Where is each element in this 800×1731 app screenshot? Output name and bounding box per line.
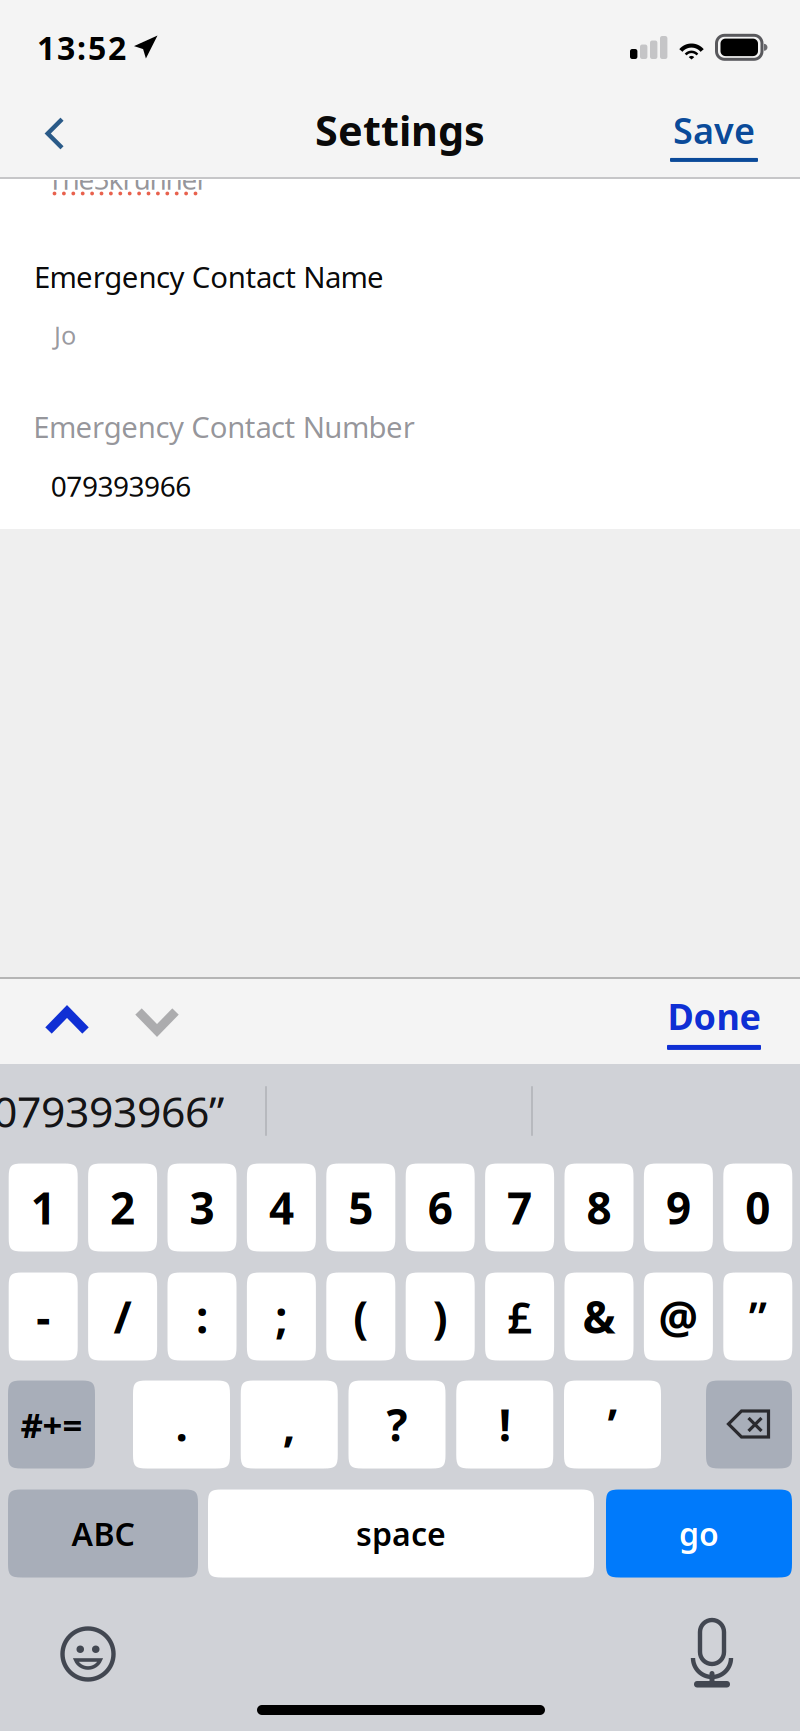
staticText: ) xyxy=(433,1287,448,1346)
staticText: ( xyxy=(353,1287,368,1346)
button[interactable]: @ xyxy=(644,1272,713,1360)
button[interactable]: ’ xyxy=(564,1380,661,1468)
button[interactable]: Next field xyxy=(113,978,201,1064)
button[interactable]: Delete xyxy=(706,1380,792,1468)
button[interactable]: Back xyxy=(17,100,93,166)
button[interactable]: £ xyxy=(485,1272,554,1360)
staticText: ! xyxy=(499,1395,511,1454)
staticText: : xyxy=(196,1287,208,1346)
staticText: 9 xyxy=(666,1178,691,1237)
button[interactable]: Save xyxy=(652,101,776,167)
staticText: Save xyxy=(673,106,755,154)
button[interactable]: 4 xyxy=(247,1163,316,1251)
staticText: 6 xyxy=(428,1178,453,1237)
staticText: Jo xyxy=(54,318,76,352)
button[interactable]: go xyxy=(606,1489,792,1577)
staticText: . xyxy=(175,1395,187,1454)
staticText: Done xyxy=(667,992,760,1040)
staticText: / xyxy=(114,1287,132,1346)
staticText: ’ xyxy=(607,1395,617,1454)
staticText: space xyxy=(356,1512,446,1555)
button[interactable]: #+= xyxy=(8,1380,95,1468)
staticText: Emergency Contact Name xyxy=(34,257,384,296)
staticText: 0 xyxy=(745,1178,770,1237)
staticText: 8 xyxy=(586,1178,611,1237)
button[interactable]: 0 xyxy=(723,1163,792,1251)
button[interactable]: / xyxy=(88,1272,157,1360)
staticText: 2 xyxy=(110,1178,135,1237)
staticText: 5 xyxy=(348,1178,373,1237)
staticText: , xyxy=(283,1395,296,1454)
button[interactable]: Done xyxy=(652,986,776,1056)
button[interactable]: . xyxy=(133,1380,230,1468)
button[interactable]: 3 xyxy=(167,1163,236,1251)
button[interactable]: 7 xyxy=(485,1163,554,1251)
staticText: - xyxy=(36,1287,50,1346)
staticText: £ xyxy=(507,1287,532,1346)
staticText: @ xyxy=(658,1287,698,1346)
staticText: ; xyxy=(275,1287,288,1346)
staticText: The5krunner xyxy=(47,160,208,198)
button[interactable]: Dictation xyxy=(674,1619,750,1689)
button[interactable]: ( xyxy=(326,1272,395,1360)
staticText: ABC xyxy=(71,1512,134,1555)
button[interactable]: ABC xyxy=(8,1489,198,1577)
staticText: 3 xyxy=(189,1178,214,1237)
button[interactable]: 2 xyxy=(88,1163,157,1251)
staticText: 1 xyxy=(31,1178,56,1237)
button[interactable]: Previous field xyxy=(23,978,111,1064)
staticText: 13:52 xyxy=(37,26,126,69)
button[interactable]: ? xyxy=(348,1380,445,1468)
staticText: ” xyxy=(749,1287,767,1346)
staticText: go xyxy=(679,1512,719,1555)
staticText: Settings xyxy=(315,103,485,157)
staticText: Emergency Contact Number xyxy=(33,407,415,446)
button[interactable]: 8 xyxy=(564,1163,633,1251)
button[interactable]: Emoji keyboard xyxy=(50,1619,126,1689)
button[interactable]: & xyxy=(564,1272,633,1360)
button[interactable]: ! xyxy=(456,1380,553,1468)
staticText: #+= xyxy=(20,1401,82,1447)
button[interactable]: : xyxy=(167,1272,236,1360)
button[interactable]: 1 xyxy=(9,1163,78,1251)
staticText: “079393966” xyxy=(0,1083,224,1139)
button[interactable]: , xyxy=(241,1380,338,1468)
button[interactable]: ” xyxy=(723,1272,792,1360)
staticText: 7 xyxy=(507,1178,532,1237)
staticText: 079393966 xyxy=(51,467,191,505)
button[interactable]: space xyxy=(208,1489,594,1577)
staticText: & xyxy=(582,1287,615,1346)
button[interactable]: ) xyxy=(406,1272,475,1360)
staticText: 4 xyxy=(269,1178,294,1237)
button[interactable]: ; xyxy=(247,1272,316,1360)
button[interactable]: 9 xyxy=(644,1163,713,1251)
button[interactable]: 6 xyxy=(406,1163,475,1251)
staticText: ? xyxy=(386,1395,407,1454)
button[interactable]: - xyxy=(9,1272,78,1360)
button[interactable]: 5 xyxy=(326,1163,395,1251)
